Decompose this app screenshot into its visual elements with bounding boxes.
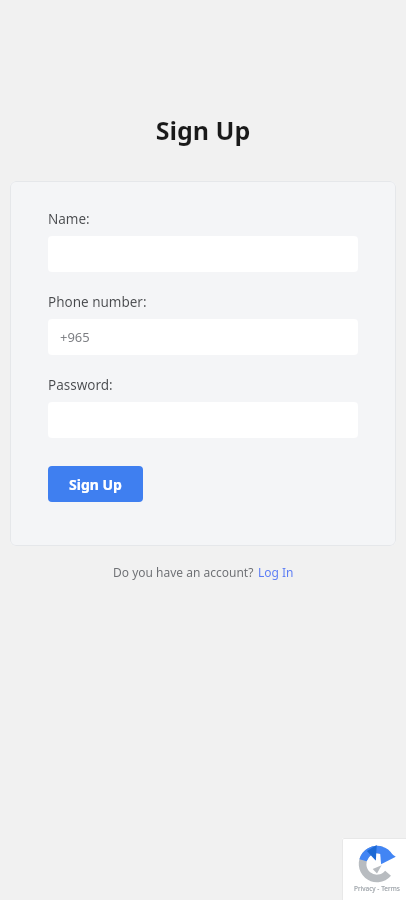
staticText: Password: bbox=[48, 376, 113, 394]
button[interactable]: Log In bbox=[258, 564, 294, 580]
button[interactable]: +965 bbox=[48, 319, 358, 355]
staticText: Privacy - Terms bbox=[354, 884, 400, 893]
staticText: Log In bbox=[258, 564, 294, 580]
staticText: Sign Up bbox=[0, 113, 406, 147]
staticText: Sign Up bbox=[69, 475, 122, 494]
button[interactable]: Sign Up bbox=[48, 466, 143, 502]
staticText: Phone number: bbox=[48, 293, 147, 311]
button[interactable]: reCAPTCHA privacy and terms bbox=[342, 838, 406, 900]
staticText: Do you have an account? bbox=[113, 564, 254, 580]
staticText: +965 bbox=[60, 328, 90, 346]
staticText: Name: bbox=[48, 210, 90, 228]
